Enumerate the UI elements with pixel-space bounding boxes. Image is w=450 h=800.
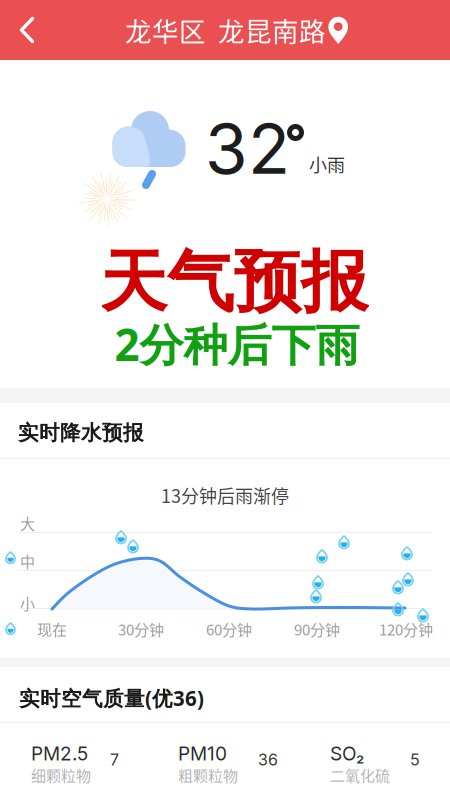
staticText: 7 [110, 750, 119, 769]
staticText: 龙华区 [125, 11, 206, 49]
staticText: 小 [20, 592, 35, 614]
staticText: 细颗粒物 [31, 764, 91, 786]
staticText: 天气预报 [100, 240, 368, 324]
staticText: 36 [258, 750, 278, 769]
staticText: 120分钟 [379, 618, 433, 640]
staticText: 粗颗粒物 [178, 764, 238, 786]
staticText: 实时空气质量(优36) [19, 684, 204, 712]
staticText: 龙昆南路 [218, 11, 326, 49]
button[interactable]: Back [3, 0, 51, 60]
staticText: 13分钟后雨渐停 [161, 482, 289, 508]
staticText: PM2.5 [31, 742, 88, 765]
staticText: PM10 [178, 742, 227, 765]
staticText: 30分钟 [118, 618, 164, 640]
staticText: 90分钟 [294, 618, 340, 640]
staticText: 现在 [37, 618, 67, 640]
staticText: 32 [205, 107, 290, 190]
button[interactable]: 龙华区 [120, 0, 353, 60]
staticText: 二氧化硫 [330, 764, 390, 786]
staticText: SO₂ [330, 742, 364, 765]
staticText: 大 [20, 512, 35, 534]
staticText: 2分种后下雨 [114, 314, 359, 374]
staticText: 中 [20, 550, 35, 572]
staticText: 实时降水预报 [18, 420, 144, 446]
staticText: 小雨 [309, 151, 345, 177]
staticText: 60分钟 [206, 618, 252, 640]
staticText: 5 [410, 750, 420, 769]
